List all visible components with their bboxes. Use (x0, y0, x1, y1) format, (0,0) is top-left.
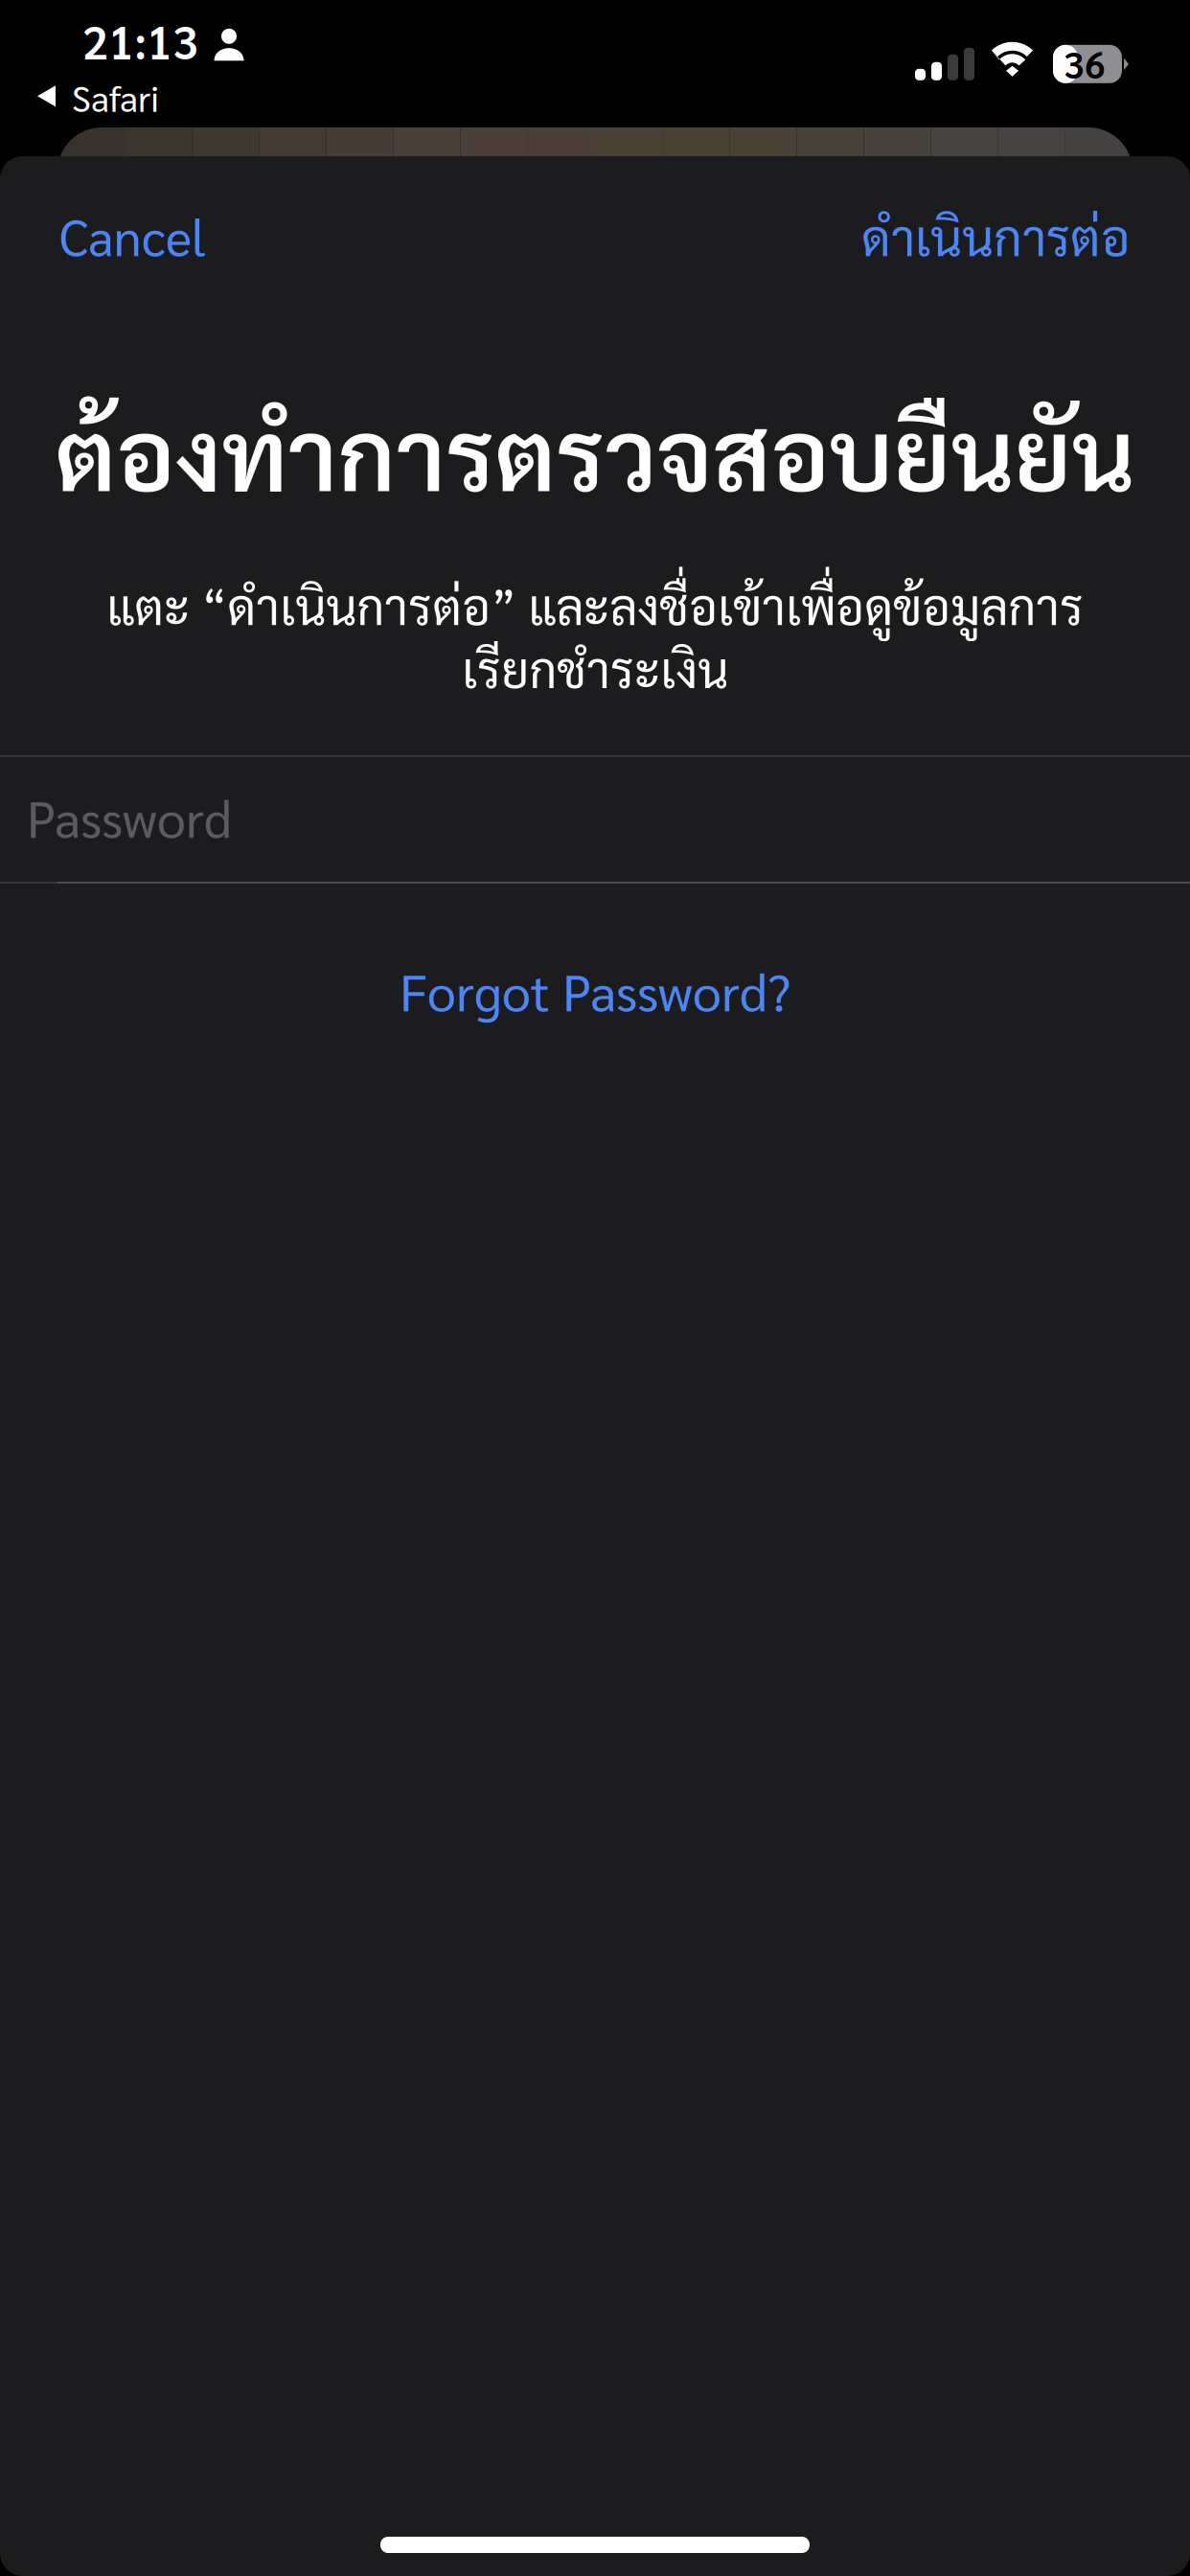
staticText: 21:13 (82, 10, 198, 70)
staticText: ต้องทำการตรวจสอบยืนยัน (55, 386, 1135, 514)
staticText: Cancel (59, 203, 206, 268)
staticText: 36 (1064, 39, 1106, 87)
staticText: แตะ “ดำเนินการต่อ” และลงชื่อเข้าเพื่อดูข… (106, 573, 1084, 699)
staticText: Password (27, 783, 232, 850)
staticText: ดำเนินการต่อ (861, 203, 1131, 268)
staticText: Safari (72, 74, 159, 120)
button[interactable]: ดำเนินการต่อ (838, 202, 1131, 268)
button[interactable]: Cancel (59, 202, 229, 268)
staticText: Forgot Password? (400, 957, 790, 1023)
button[interactable]: Forgot Password? (352, 956, 838, 1023)
